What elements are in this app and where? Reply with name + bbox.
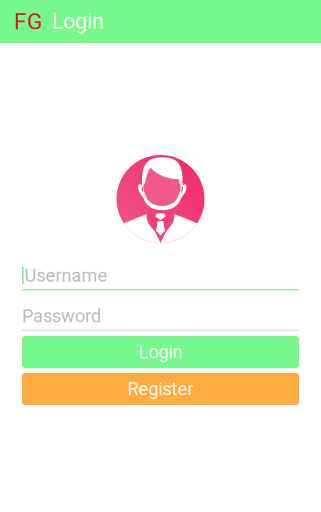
staticText: FG — [14, 8, 42, 35]
staticText: Login — [138, 341, 182, 363]
staticText: Register — [127, 378, 193, 400]
staticText: Username — [25, 265, 108, 286]
staticText: Login — [42, 9, 104, 34]
button[interactable]: Login — [22, 336, 299, 368]
button[interactable]: Register — [22, 373, 299, 405]
staticText: Password — [22, 305, 101, 327]
